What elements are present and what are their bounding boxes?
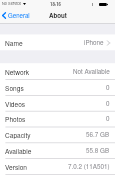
staticText: Videos [5,99,26,108]
staticText: Capacity [5,130,31,139]
other: Back to General [2,12,6,19]
staticText: 0 [106,114,110,123]
staticText: 56.7 GB [86,130,110,139]
staticText: Version [5,162,28,171]
staticText: Available [5,146,32,155]
staticText: Network [5,67,30,76]
staticText: 18:16 [50,1,61,7]
staticText: Name [5,38,23,47]
button[interactable]: Available [0,143,115,159]
staticText: Photos [5,114,26,123]
button[interactable]: Videos [0,96,115,112]
button[interactable]: Back to General [2,11,30,20]
staticText: 0 [106,99,110,108]
staticText: Songs [5,83,24,92]
staticText: About [49,11,67,20]
button[interactable]: Capacity [0,127,115,143]
button[interactable]: Version [0,159,115,175]
staticText: 0 [106,83,110,92]
staticText: Not Available [73,67,110,76]
button[interactable]: Name [0,35,115,51]
staticText: 55.8 GB [86,146,110,155]
button[interactable]: Songs [0,80,115,96]
button[interactable]: Photos [0,111,115,127]
staticText: General [8,11,30,20]
button[interactable]: Network [0,64,115,80]
staticText: No Service [2,1,22,7]
staticText: 7.0.2 (11A501) [68,162,110,171]
staticText: iPhone [84,38,104,47]
